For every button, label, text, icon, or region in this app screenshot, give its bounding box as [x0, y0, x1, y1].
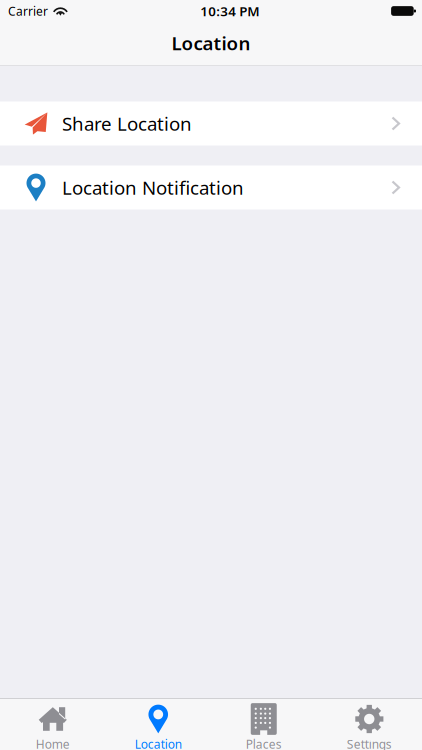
button[interactable]: Settings	[316, 699, 422, 750]
staticText: Places	[246, 736, 282, 750]
button[interactable]: Home	[0, 699, 105, 750]
staticText: Location Notification	[62, 175, 244, 200]
staticText: Home	[36, 736, 70, 750]
staticText: Carrier	[8, 3, 48, 19]
button[interactable]: Location	[105, 699, 211, 750]
staticText: Share Location	[62, 111, 192, 136]
staticText: 10:34 PM	[200, 2, 259, 20]
staticText: Location	[135, 736, 182, 750]
button[interactable]: Share Location	[0, 101, 422, 145]
button[interactable]: Location Notification	[0, 165, 422, 209]
staticText: Location	[171, 31, 250, 55]
staticText: Settings	[347, 736, 392, 750]
button[interactable]: Places	[211, 699, 316, 750]
